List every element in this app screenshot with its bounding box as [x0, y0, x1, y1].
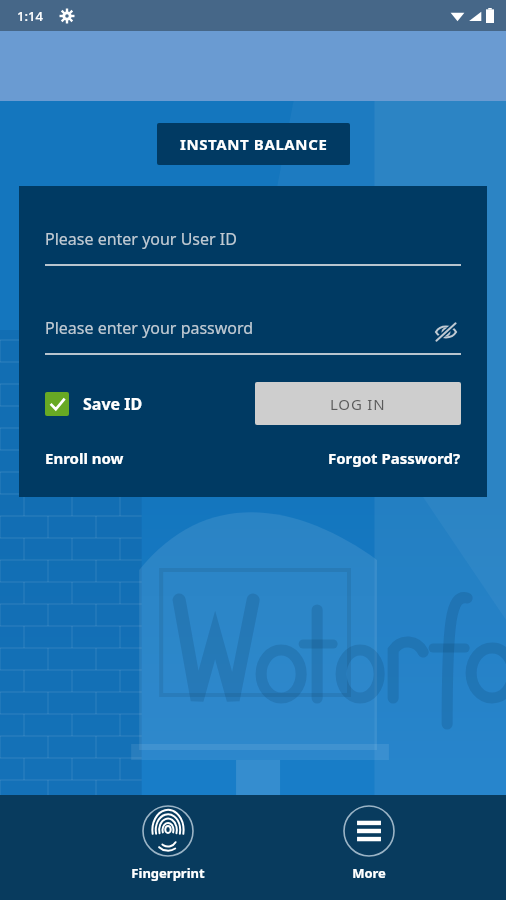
button[interactable]: Save ID: [45, 392, 143, 416]
staticText: Enroll now: [45, 448, 124, 468]
staticText: LOG IN: [330, 394, 386, 414]
staticText: Forgot Password?: [328, 448, 461, 468]
button[interactable]: Please enter your User ID: [45, 228, 461, 266]
button[interactable]: LOG IN: [255, 382, 461, 425]
staticText: More: [352, 864, 386, 882]
button[interactable]: INSTANT BALANCE: [157, 123, 350, 165]
button[interactable]: More: [343, 795, 395, 882]
button[interactable]: Enroll now: [45, 448, 124, 468]
staticText: Save ID: [83, 393, 143, 415]
staticText: INSTANT BALANCE: [180, 134, 328, 154]
button[interactable]: Fingerprint: [131, 795, 205, 882]
button[interactable]: Please enter your password: [45, 317, 461, 355]
button[interactable]: Show password: [431, 317, 461, 347]
staticText: Please enter your password: [45, 317, 254, 339]
staticText: Please enter your User ID: [45, 228, 237, 250]
button[interactable]: Forgot Password?: [328, 448, 461, 468]
staticText: 1:14: [17, 7, 43, 25]
staticText: Fingerprint: [131, 864, 205, 882]
